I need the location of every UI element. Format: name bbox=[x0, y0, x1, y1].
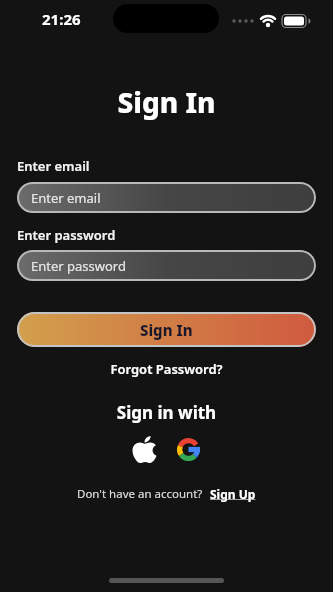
button[interactable]: Enter password bbox=[17, 250, 316, 281]
button[interactable] bbox=[131, 436, 158, 463]
staticText: Sign In bbox=[0, 83, 333, 121]
button[interactable] bbox=[177, 438, 200, 461]
staticText: Enter password bbox=[31, 257, 126, 275]
button[interactable]: Enter email bbox=[17, 182, 316, 213]
button[interactable]: Sign Up bbox=[210, 486, 256, 502]
staticText: Enter email bbox=[31, 189, 101, 207]
staticText: Don't have an account? bbox=[77, 486, 203, 502]
button[interactable]: Sign In bbox=[17, 312, 316, 347]
staticText: Enter email bbox=[17, 157, 90, 175]
button[interactable]: Forgot Password? bbox=[0, 360, 333, 378]
staticText: Sign in with bbox=[0, 401, 333, 424]
staticText: Enter password bbox=[17, 226, 116, 244]
staticText: 21:26 bbox=[42, 9, 81, 29]
staticText: Sign In bbox=[140, 320, 193, 340]
